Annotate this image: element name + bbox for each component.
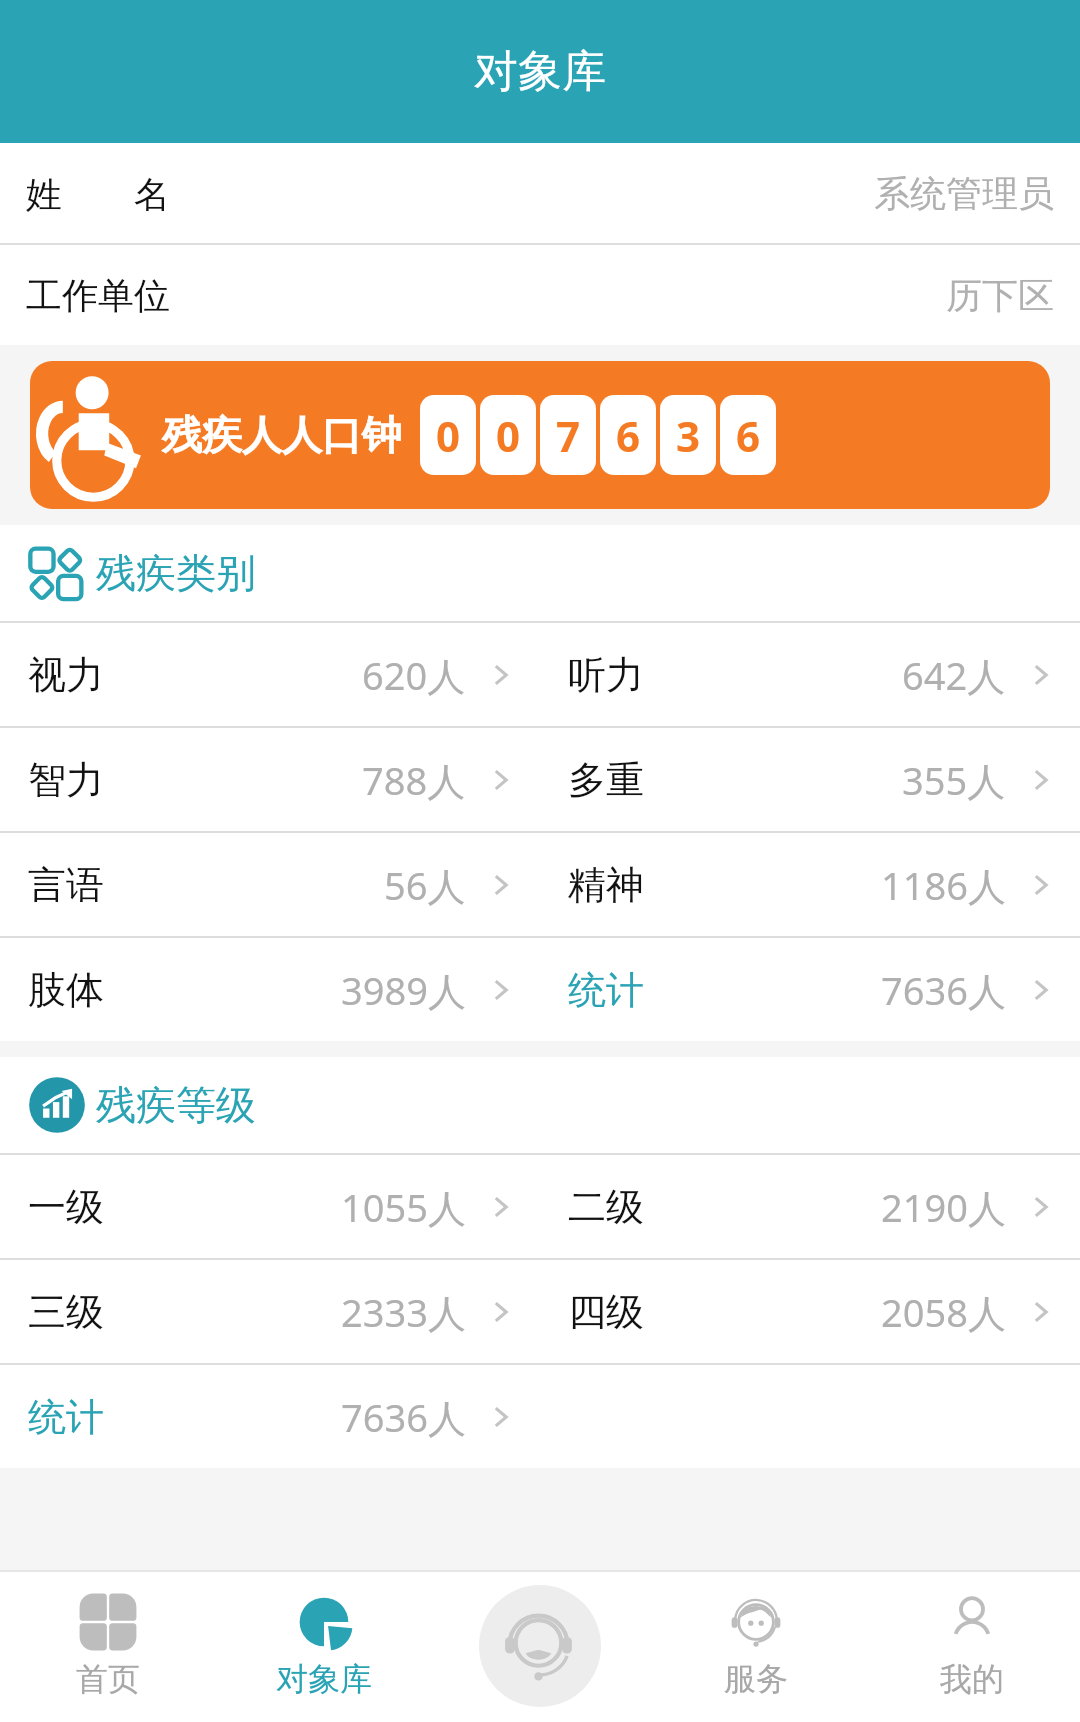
staticText: 0: [496, 407, 521, 464]
staticText: 788人: [362, 754, 466, 806]
staticText: 2058人: [881, 1286, 1006, 1338]
staticText: 我的: [940, 1659, 1004, 1699]
staticText: 系统管理员: [874, 171, 1054, 216]
staticText: 姓 名: [26, 169, 170, 218]
staticText: 残疾等级: [96, 1080, 256, 1130]
staticText: 对象库: [276, 1659, 372, 1699]
staticText: 620人: [362, 649, 466, 701]
staticText: 视力: [28, 651, 104, 699]
staticText: 首页: [76, 1659, 140, 1699]
button[interactable]: 统计: [540, 938, 1080, 1041]
staticText: 355人: [902, 754, 1006, 806]
button[interactable]: 智力: [0, 728, 540, 831]
staticText: 历下区: [946, 273, 1054, 318]
staticText: 0: [436, 407, 461, 464]
button[interactable]: 对象库: [216, 1570, 432, 1722]
staticText: 7636人: [881, 964, 1006, 1016]
staticText: 6: [616, 407, 641, 464]
button[interactable]: 四级: [540, 1260, 1080, 1363]
staticText: 1055人: [341, 1181, 466, 1233]
staticText: 1186人: [881, 859, 1006, 911]
button[interactable]: 多重: [540, 728, 1080, 831]
button[interactable]: 听力: [540, 623, 1080, 726]
staticText: 四级: [568, 1288, 644, 1336]
button[interactable]: 三级: [0, 1260, 540, 1363]
staticText: 7636人: [341, 1391, 466, 1443]
staticText: 3989人: [341, 964, 466, 1016]
button[interactable]: 精神: [540, 833, 1080, 936]
staticText: 2190人: [881, 1181, 1006, 1233]
button[interactable]: 统计: [0, 1365, 540, 1468]
staticText: 2333人: [341, 1286, 466, 1338]
staticText: 3: [676, 407, 701, 464]
staticText: 对象库: [474, 44, 606, 99]
button[interactable]: 视力: [0, 623, 540, 726]
staticText: 642人: [902, 649, 1006, 701]
button[interactable]: 首页: [0, 1570, 216, 1722]
staticText: 听力: [568, 651, 644, 699]
button[interactable]: 姓 名: [0, 143, 1080, 243]
staticText: 精神: [568, 861, 644, 909]
button[interactable]: 一级: [0, 1155, 540, 1258]
staticText: 统计: [28, 1393, 104, 1441]
staticText: 工作单位: [26, 273, 170, 318]
staticText: 二级: [568, 1183, 644, 1231]
button[interactable]: 二级: [540, 1155, 1080, 1258]
staticText: 残疾类别: [96, 548, 256, 598]
staticText: 三级: [28, 1288, 104, 1336]
staticText: 6: [736, 407, 761, 464]
staticText: 多重: [568, 756, 644, 804]
staticText: 一级: [28, 1183, 104, 1231]
button[interactable]: 肢体: [0, 938, 540, 1041]
button[interactable]: 客服: [479, 1585, 601, 1707]
button[interactable]: 服务: [648, 1570, 864, 1722]
staticText: 智力: [28, 756, 104, 804]
staticText: 服务: [724, 1659, 788, 1699]
button[interactable]: 我的: [864, 1570, 1080, 1722]
staticText: 言语: [28, 861, 104, 909]
staticText: 56人: [384, 859, 466, 911]
button[interactable]: 残疾人人口钟: [30, 361, 1050, 509]
button[interactable]: 言语: [0, 833, 540, 936]
staticText: 7: [556, 407, 581, 464]
staticText: 残疾人人口钟: [162, 410, 402, 460]
staticText: 统计: [568, 966, 644, 1014]
button[interactable]: 工作单位: [0, 245, 1080, 345]
staticText: 肢体: [28, 966, 104, 1014]
